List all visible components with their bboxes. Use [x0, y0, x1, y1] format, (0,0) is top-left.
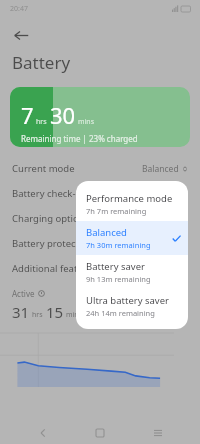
staticText: Performance mode: [86, 192, 173, 205]
staticText: 9h 13m remaining: [86, 274, 151, 284]
staticText: Balanced: [142, 163, 179, 175]
button[interactable]: Battery check-up: [0, 181, 200, 206]
staticText: 31: [12, 302, 30, 322]
staticText: mins: [66, 310, 83, 320]
staticText: 20:47: [10, 4, 28, 14]
staticText: 24h 14m remaining: [86, 308, 155, 318]
button[interactable]: Back: [6, 20, 36, 50]
button[interactable]: Current mode: [0, 156, 200, 181]
button[interactable]: 7: [10, 87, 190, 147]
staticText: Battery check-up: [12, 187, 188, 200]
staticText: Ultra battery saver: [86, 294, 169, 307]
staticText: Additional features: [12, 262, 188, 275]
staticText: Battery protection: [12, 237, 188, 250]
button[interactable]: Additional features: [0, 256, 200, 281]
staticText: hrs: [32, 310, 43, 320]
button[interactable]: Back: [28, 422, 58, 444]
staticText: Battery: [12, 51, 71, 74]
staticText: Battery: [102, 299, 126, 309]
staticText: 7h 7m remaining: [86, 206, 147, 216]
staticText: Battery saver: [86, 260, 145, 273]
staticText: usage: [102, 309, 122, 319]
button[interactable]: Balanced: [76, 221, 188, 255]
staticText: 30: [50, 100, 76, 130]
button[interactable]: Ultra battery saver: [76, 289, 188, 323]
button[interactable]: Performance mode: [76, 187, 188, 221]
staticText: mins: [78, 117, 95, 127]
staticText: Charging options: [12, 212, 188, 225]
staticText: Charging: [142, 299, 173, 309]
staticText: hrs: [36, 117, 47, 127]
button[interactable]: Home: [85, 422, 115, 444]
staticText: Balanced: [86, 226, 127, 239]
button[interactable]: Battery protection: [0, 231, 200, 256]
staticText: 7h 30m remaining: [86, 240, 151, 250]
staticText: Active: [12, 288, 35, 299]
button[interactable]: Recent apps: [143, 422, 173, 444]
staticText: Current mode: [12, 162, 142, 175]
staticText: Remaining time | 23% charged: [21, 133, 138, 144]
staticText: 15: [46, 302, 64, 322]
staticText: 7: [21, 100, 34, 130]
button[interactable]: Battery saver: [76, 255, 188, 289]
button[interactable]: Charging options: [0, 206, 200, 231]
